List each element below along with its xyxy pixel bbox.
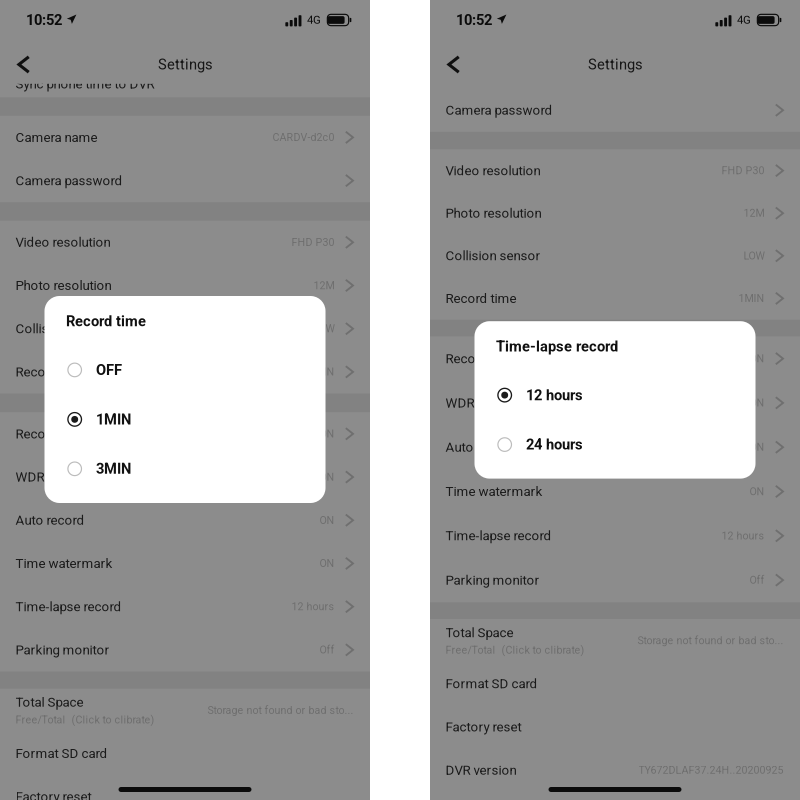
staticText: 24 hours (526, 436, 583, 453)
staticText: 3MIN (96, 460, 131, 477)
staticText: 12 hours (292, 600, 335, 613)
button[interactable]: 1MIN (44, 395, 325, 444)
staticText: Record time (66, 313, 146, 330)
button[interactable]: Camera password (430, 89, 800, 132)
button[interactable]: Format SD card (0, 732, 370, 775)
button[interactable]: DVR version (430, 749, 800, 792)
button[interactable]: Auto record (430, 425, 800, 469)
button[interactable]: Photo resolution (0, 264, 370, 307)
staticText: Record time (15, 364, 86, 380)
staticText: Record audio (445, 351, 523, 366)
staticText: 1MIN (309, 366, 335, 378)
button[interactable]: Parking monitor (430, 558, 800, 602)
staticText: FHD P30 (722, 164, 765, 177)
staticText: Record audio (15, 426, 93, 442)
button[interactable]: Format SD card (430, 662, 800, 705)
staticText: OFF (96, 361, 122, 378)
staticText: Sync phone time to DVR (15, 76, 154, 92)
staticText: Settings (158, 56, 213, 73)
staticText: WDR (15, 469, 44, 485)
staticText: ON (320, 471, 335, 483)
staticText: Off (320, 644, 335, 656)
staticText: Free/Total (Click to clibrate) (15, 714, 154, 726)
button[interactable]: Factory reset (430, 705, 800, 749)
button[interactable]: Time-lapse record (0, 585, 370, 628)
staticText: ON (320, 557, 335, 570)
staticText: WDR (445, 395, 474, 411)
button[interactable]: Auto record (0, 499, 370, 542)
staticText: ON (750, 397, 765, 409)
staticText: Time watermark (15, 556, 112, 571)
button[interactable]: WDR (0, 455, 370, 499)
staticText: Time-lapse record (496, 338, 618, 355)
button[interactable]: Collision sensor (0, 307, 370, 350)
button[interactable]: Time watermark (0, 542, 370, 585)
button[interactable]: 3MIN (44, 444, 325, 494)
staticText: Collision sensor (15, 321, 110, 336)
button[interactable]: Total Space (0, 689, 370, 732)
staticText: Format SD card (15, 746, 107, 761)
button[interactable]: Time-lapse record (430, 514, 800, 558)
staticText: Off (750, 574, 765, 586)
button[interactable]: Time watermark (430, 469, 800, 514)
staticText: Total Space (445, 625, 513, 640)
button[interactable]: Record audio (430, 336, 800, 381)
staticText: LOW (744, 249, 765, 262)
button[interactable]: WDR (430, 381, 800, 425)
staticText: LOW (314, 322, 335, 335)
staticText: Factory reset (445, 719, 521, 735)
staticText: 12M (744, 207, 765, 219)
staticText: Auto record (15, 512, 84, 528)
staticText: ON (320, 514, 335, 526)
button[interactable]: 24 hours (474, 420, 755, 469)
staticText: Format SD card (445, 676, 537, 692)
staticText: 4G (307, 13, 321, 27)
button[interactable]: Record time (430, 277, 800, 320)
button[interactable]: 12 hours (474, 370, 755, 420)
staticText: Camera password (445, 102, 552, 118)
staticText: Storage not found or bad sto... (638, 634, 784, 647)
staticText: 10:52 (456, 11, 492, 29)
button[interactable]: Total Space (430, 619, 800, 662)
button[interactable]: Parking monitor (0, 628, 370, 671)
staticText: 12M (314, 279, 335, 292)
staticText: FHD P30 (292, 236, 335, 248)
button[interactable]: Camera password (0, 159, 370, 202)
button[interactable]: Back (432, 43, 476, 85)
staticText: 4G (737, 13, 751, 27)
staticText: 12 hours (722, 529, 765, 542)
button[interactable]: Record time (0, 350, 370, 393)
button[interactable]: Record audio (0, 412, 370, 455)
staticText: 1MIN (739, 292, 765, 305)
staticText: Camera name (15, 130, 97, 145)
staticText: Free/Total (Click to clibrate) (445, 644, 584, 656)
staticText: 12 hours (526, 386, 583, 404)
staticText: Total Space (15, 694, 83, 710)
staticText: Time watermark (445, 484, 542, 499)
staticText: Photo resolution (445, 205, 541, 221)
staticText: DVR version (445, 762, 516, 778)
button[interactable]: Factory reset (0, 775, 370, 800)
staticText: Parking monitor (15, 642, 109, 658)
button[interactable]: Collision sensor (430, 234, 800, 277)
staticText: ON (750, 485, 765, 498)
staticText: Auto record (445, 439, 514, 455)
staticText: Settings (588, 56, 643, 73)
button[interactable]: Photo resolution (430, 192, 800, 234)
button[interactable]: OFF (44, 345, 325, 395)
button[interactable]: Camera name (0, 116, 370, 159)
button[interactable]: Video resolution (430, 149, 800, 192)
staticText: Record time (445, 291, 516, 306)
staticText: ON (750, 441, 765, 453)
staticText: ON (750, 352, 765, 365)
staticText: TY672DLAF37.24H..20200925 (639, 764, 784, 776)
staticText: Collision sensor (445, 248, 540, 264)
button[interactable]: Video resolution (0, 221, 370, 264)
staticText: 1MIN (96, 411, 131, 428)
staticText: ON (320, 428, 335, 440)
staticText: Time-lapse record (445, 528, 551, 544)
staticText: Factory reset (15, 789, 91, 800)
staticText: 10:52 (26, 11, 62, 29)
button[interactable]: Back (2, 43, 46, 85)
staticText: Camera password (15, 173, 122, 188)
